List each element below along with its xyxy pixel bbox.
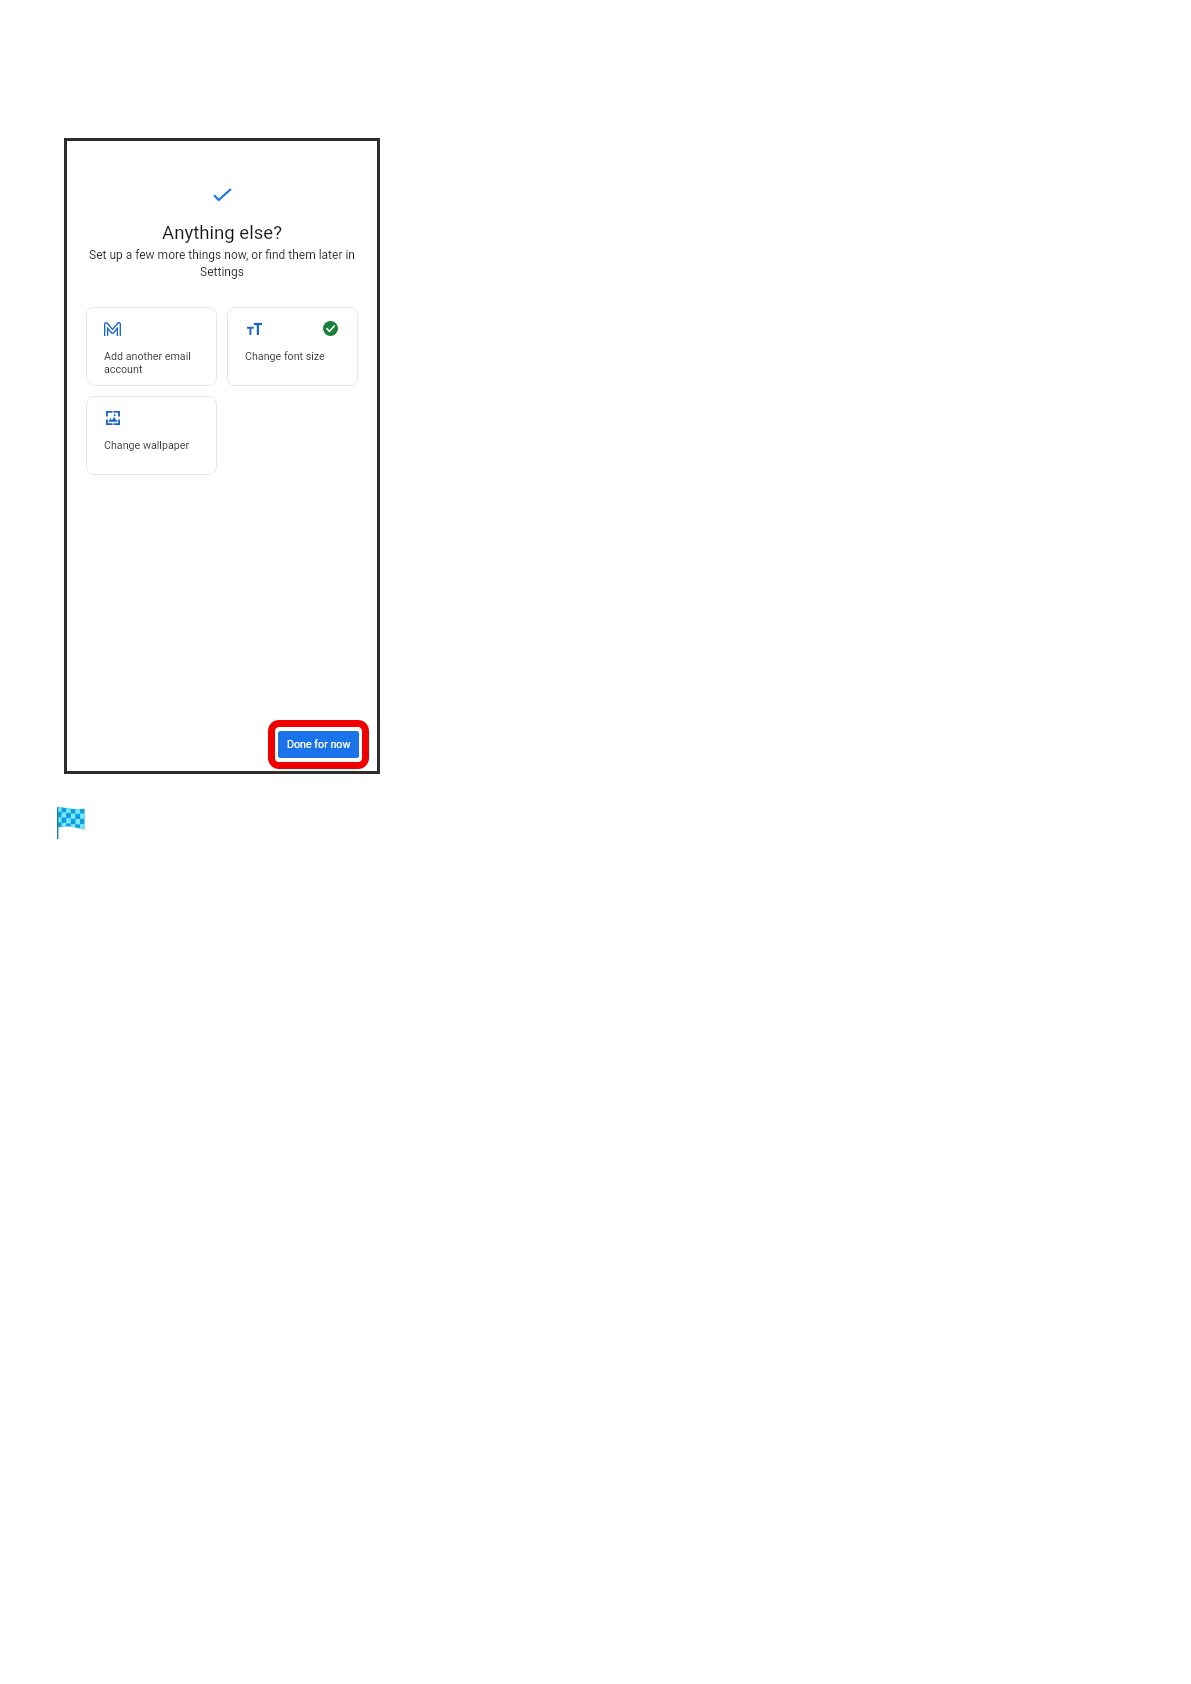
staticText: Set up a few more things now, or find th… [87, 248, 357, 279]
staticText: Change font size [245, 350, 325, 363]
button[interactable]: Change wallpaper [86, 396, 217, 475]
staticText: Change wallpaper [104, 439, 190, 452]
staticText: Anything else? [162, 222, 282, 244]
other: Checkered flag [56, 806, 85, 839]
staticText: Add another email account [104, 350, 191, 376]
button[interactable]: Change font size [227, 307, 358, 386]
button[interactable]: Done for now [278, 731, 359, 758]
staticText: Done for now [287, 738, 351, 751]
button[interactable]: Add another email account [86, 307, 217, 386]
